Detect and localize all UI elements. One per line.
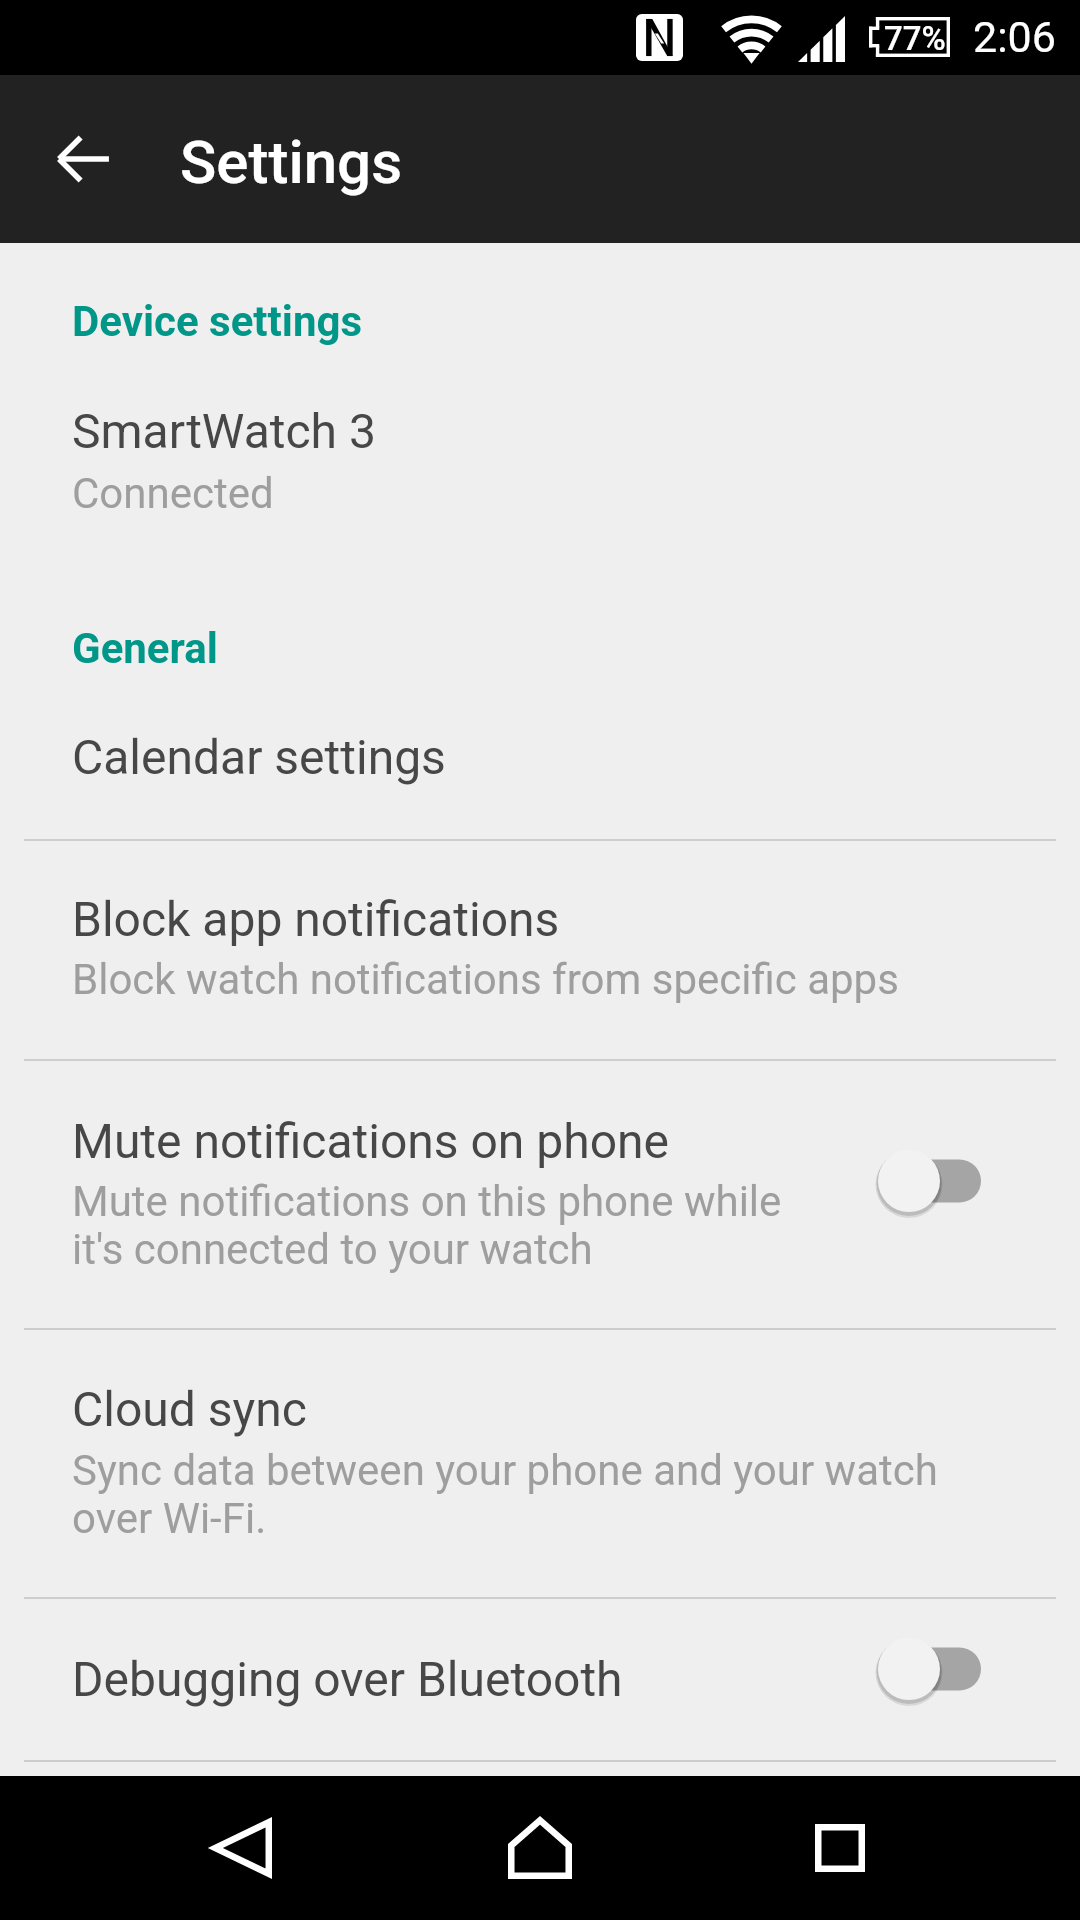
staticText: Debugging over Bluetooth — [72, 1651, 623, 1707]
staticText: 2:06 — [973, 12, 1056, 62]
button[interactable]: Back — [162, 1788, 322, 1908]
button[interactable]: Mute notifications on phone — [0, 1061, 1080, 1328]
button[interactable]: Toggle switch — [856, 1131, 1000, 1231]
button[interactable]: SmartWatch 3 — [0, 360, 1080, 540]
button[interactable]: Recent apps — [760, 1788, 920, 1908]
button[interactable]: Cloud sync — [0, 1330, 1080, 1597]
staticText: 77% — [884, 19, 946, 58]
staticText: Block app notifications — [72, 891, 560, 947]
staticText: General — [72, 624, 218, 673]
staticText: Mute notifications on this phone while i… — [72, 1177, 782, 1274]
button[interactable]: Calendar settings — [0, 688, 1080, 839]
button[interactable]: Debugging over Bluetooth — [0, 1599, 1080, 1760]
button[interactable]: Back — [44, 119, 124, 199]
staticText: Connected — [72, 469, 274, 518]
button[interactable]: Block app notifications — [0, 841, 1080, 1059]
staticText: Block watch notifications from specific … — [72, 955, 899, 1004]
staticText: SmartWatch 3 — [72, 403, 376, 459]
button[interactable]: Toggle switch — [856, 1619, 1000, 1719]
staticText: Calendar settings — [72, 729, 446, 785]
staticText: Sync data between your phone and your wa… — [72, 1446, 938, 1543]
button[interactable]: Home — [460, 1788, 620, 1908]
staticText: Mute notifications on phone — [72, 1113, 669, 1169]
staticText: Cloud sync — [72, 1381, 307, 1437]
staticText: Device settings — [72, 297, 363, 346]
staticText: Settings — [180, 127, 403, 197]
